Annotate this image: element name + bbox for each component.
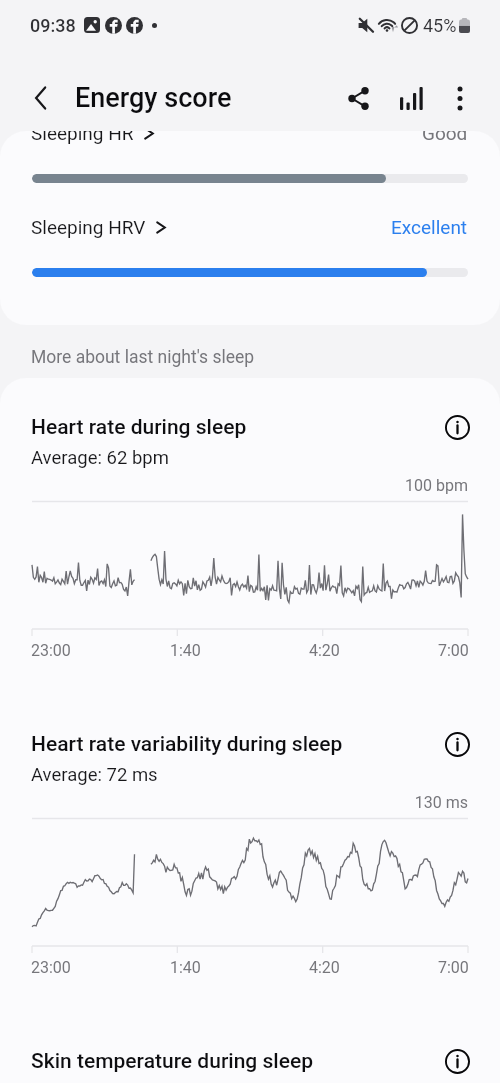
staticText: Sleeping HRV — [31, 216, 146, 238]
staticText: Energy score — [75, 82, 232, 114]
button[interactable]: Back — [19, 77, 61, 119]
button[interactable]: Share — [336, 76, 380, 120]
button[interactable]: More options — [444, 82, 476, 114]
staticText: Heart rate during sleep — [31, 415, 440, 440]
staticText: Good — [422, 131, 468, 144]
staticText: 09:38 — [30, 15, 76, 36]
staticText: 23:00 — [31, 958, 71, 977]
staticText: Excellent — [391, 216, 468, 238]
button[interactable]: Heart rate variability during sleep — [0, 722, 500, 766]
staticText: 100 bpm — [0, 476, 468, 495]
staticText: More about last night's sleep — [31, 347, 255, 368]
staticText: Average: 72 ms — [31, 764, 158, 786]
staticText: 7:00 — [438, 641, 469, 660]
button[interactable]: Sleeping HR — [0, 131, 500, 183]
button[interactable]: Skin temperature during sleep — [0, 1039, 500, 1083]
staticText: 130 ms — [0, 793, 468, 812]
staticText: Heart rate variability during sleep — [31, 732, 440, 757]
staticText: Skin temperature during sleep — [31, 1049, 440, 1074]
staticText: Average: 62 bpm — [31, 447, 169, 469]
staticText: 4:20 — [309, 641, 340, 660]
button[interactable]: Info — [440, 410, 474, 444]
button[interactable]: Info — [440, 1044, 474, 1078]
staticText: 45% — [423, 15, 457, 36]
staticText: 1:40 — [170, 958, 201, 977]
button[interactable]: Info — [440, 727, 474, 761]
button[interactable]: Heart rate during sleep — [0, 405, 500, 449]
button[interactable]: Statistics — [391, 78, 431, 118]
staticText: Sleeping HR — [31, 131, 134, 144]
staticText: 7:00 — [438, 958, 469, 977]
staticText: 4:20 — [309, 958, 340, 977]
staticText: 23:00 — [31, 641, 71, 660]
staticText: 1:40 — [170, 641, 201, 660]
button[interactable]: Sleeping HRV — [0, 216, 500, 277]
